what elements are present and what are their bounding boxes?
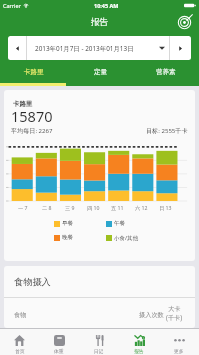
staticText: 午餐 <box>114 220 125 227</box>
staticText: Carrier <box>3 2 21 9</box>
button[interactable]: 定量 <box>67 60 133 83</box>
staticText: 二 8 <box>42 204 52 211</box>
button[interactable]: 2013年01月7日 - 2013年01月13日 <box>27 36 169 60</box>
button[interactable]: 营养素 <box>133 60 199 83</box>
staticText: 小食/其他 <box>114 234 139 242</box>
button[interactable]: 更多 <box>159 329 199 355</box>
staticText: 三 9 <box>65 204 75 211</box>
staticText: 15870 <box>11 106 53 126</box>
staticText: 首页 <box>15 348 25 354</box>
staticText: (千卡) <box>166 313 183 321</box>
staticText: 目标: 2555千卡 <box>146 126 188 134</box>
staticText: 营养素 <box>156 68 176 76</box>
button[interactable]: 卡路里 <box>0 60 67 83</box>
staticText: 报告 <box>134 348 144 354</box>
staticText: 体重 <box>54 348 64 354</box>
staticText: 大卡 <box>168 305 181 313</box>
staticText: 10:45 AM <box>94 2 119 9</box>
staticText: 食物 <box>14 311 27 319</box>
staticText: 四 10 <box>87 204 100 211</box>
staticText: 日 13 <box>159 204 172 211</box>
button[interactable]: 日记 <box>79 329 119 355</box>
staticText: 报告 <box>91 17 108 28</box>
staticText: 食物摄入 <box>14 276 51 288</box>
staticText: 定量 <box>94 68 107 76</box>
button[interactable]: 首页 <box>0 329 39 355</box>
staticText: 一 7 <box>18 204 28 211</box>
staticText: 2013年01月7日 - 2013年01月13日 <box>35 44 134 53</box>
button[interactable]: 设置目标 <box>175 13 194 32</box>
staticText: 平均每日: 2267 <box>11 126 53 134</box>
button[interactable]: 体重 <box>39 329 79 355</box>
button[interactable]: 下一周 <box>170 36 191 60</box>
staticText: 晚餐 <box>62 234 73 241</box>
button[interactable]: 上一周 <box>8 36 26 60</box>
staticText: 卡路里 <box>24 68 44 76</box>
staticText: 更多 <box>174 348 184 354</box>
button[interactable]: 报告 <box>119 329 159 355</box>
staticText: 早餐 <box>62 220 73 227</box>
staticText: 五 11 <box>111 204 124 211</box>
staticText: 卡路里 <box>13 100 33 108</box>
staticText: 摄入次数 <box>139 311 164 319</box>
staticText: 六 12 <box>135 204 148 211</box>
staticText: 日记 <box>94 348 104 354</box>
